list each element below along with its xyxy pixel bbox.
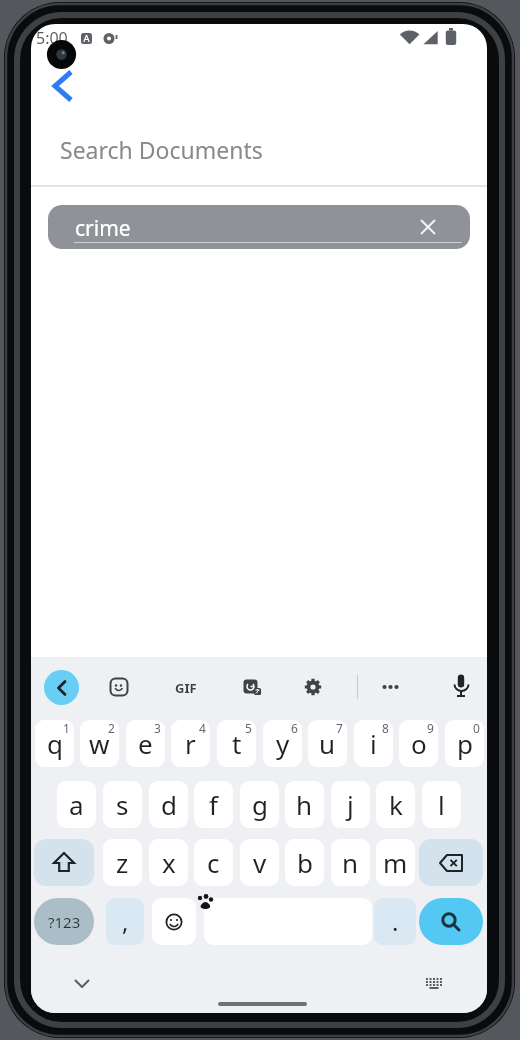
staticText: v <box>253 845 267 880</box>
button[interactable] <box>412 211 444 243</box>
button[interactable]: p <box>445 720 484 767</box>
button[interactable] <box>44 670 79 705</box>
staticText: r <box>185 726 196 761</box>
staticText: . <box>392 905 399 938</box>
staticText: p <box>457 726 473 761</box>
staticText: y <box>276 726 290 761</box>
button[interactable]: y <box>263 720 302 767</box>
button[interactable] <box>452 674 470 701</box>
staticText: q <box>47 726 63 761</box>
staticText: l <box>438 787 445 822</box>
button[interactable]: s <box>103 781 142 828</box>
button[interactable] <box>419 898 483 945</box>
button[interactable] <box>303 677 323 697</box>
staticText: f <box>209 787 218 822</box>
button[interactable] <box>421 971 447 997</box>
button[interactable]: t <box>217 720 256 767</box>
button[interactable] <box>242 677 262 697</box>
button[interactable]: l <box>422 781 461 828</box>
staticText: 2 <box>108 720 115 736</box>
staticText: c <box>207 845 220 880</box>
staticText: 0 <box>473 720 480 736</box>
button[interactable]: q <box>35 720 74 767</box>
staticText: u <box>319 726 336 761</box>
button[interactable]: i <box>354 720 393 767</box>
staticText: z <box>116 845 129 880</box>
button[interactable]: GIF <box>172 679 200 695</box>
button[interactable]: u <box>308 720 347 767</box>
staticText: x <box>162 845 176 880</box>
button[interactable]: w <box>80 720 119 767</box>
button[interactable]: e <box>126 720 165 767</box>
staticText: k <box>389 787 403 822</box>
button[interactable]: , <box>106 898 144 945</box>
staticText: crime <box>75 214 131 243</box>
staticText: m <box>383 845 408 880</box>
staticText: 3 <box>154 720 161 736</box>
staticText: b <box>297 845 313 880</box>
button[interactable]: j <box>331 781 370 828</box>
button[interactable]: g <box>240 781 279 828</box>
staticText: g <box>252 787 268 822</box>
button[interactable]: n <box>331 839 370 886</box>
button[interactable]: . <box>374 898 416 945</box>
button[interactable]: a <box>57 781 96 828</box>
staticText: 6 <box>291 720 298 736</box>
staticText: d <box>161 787 177 822</box>
button[interactable]: k <box>376 781 415 828</box>
staticText: h <box>296 787 313 822</box>
staticText: 4 <box>199 720 206 736</box>
staticText: e <box>138 726 153 761</box>
button[interactable]: f <box>194 781 233 828</box>
button[interactable]: z <box>103 839 142 886</box>
button[interactable] <box>45 66 81 106</box>
staticText: t <box>232 726 242 761</box>
button[interactable] <box>69 971 95 997</box>
staticText: j <box>347 787 354 822</box>
staticText: n <box>342 845 359 880</box>
staticText: a <box>69 787 84 822</box>
staticText: 5:00 <box>36 27 68 49</box>
staticText: w <box>89 726 110 761</box>
button[interactable] <box>204 898 372 945</box>
button[interactable]: m <box>376 839 415 886</box>
button[interactable] <box>109 677 129 697</box>
button[interactable]: crime <box>48 205 470 249</box>
staticText: GIF <box>175 679 197 695</box>
staticText: 5 <box>245 720 252 736</box>
staticText: 1 <box>63 720 70 736</box>
button[interactable] <box>152 898 196 945</box>
staticText: ?123 <box>48 912 81 932</box>
staticText: 7 <box>336 720 343 736</box>
staticText: o <box>411 726 427 761</box>
button[interactable]: c <box>194 839 233 886</box>
button[interactable]: h <box>285 781 324 828</box>
staticText: i <box>370 726 377 761</box>
staticText: , <box>122 905 129 938</box>
staticText: 8 <box>382 720 389 736</box>
button[interactable]: d <box>149 781 188 828</box>
button[interactable] <box>34 839 94 886</box>
button[interactable]: o <box>399 720 438 767</box>
button[interactable]: v <box>240 839 279 886</box>
staticText: s <box>116 787 129 822</box>
staticText: 9 <box>427 720 434 736</box>
button[interactable]: ?123 <box>34 898 94 945</box>
button[interactable]: b <box>285 839 324 886</box>
button[interactable]: x <box>149 839 188 886</box>
button[interactable] <box>419 839 483 886</box>
button[interactable] <box>382 679 399 695</box>
staticText: Search Documents <box>60 134 263 165</box>
button[interactable]: r <box>171 720 210 767</box>
